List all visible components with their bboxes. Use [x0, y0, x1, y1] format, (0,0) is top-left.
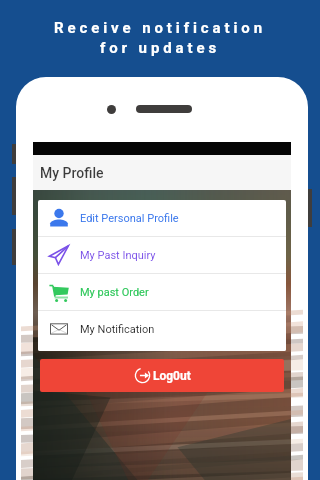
- button[interactable]: My past Order: [38, 274, 286, 310]
- staticText: My past Order: [80, 286, 149, 299]
- staticText: My Profile: [40, 165, 104, 181]
- button[interactable]: My Notification: [38, 311, 286, 347]
- staticText: My Past Inquiry: [80, 249, 156, 262]
- staticText: Receive notification for updates: [54, 19, 266, 56]
- button[interactable]: My Past Inquiry: [38, 237, 286, 273]
- button[interactable]: Log0ut: [40, 359, 284, 392]
- staticText: My Notification: [80, 323, 155, 336]
- button[interactable]: Edit Personal Profile: [38, 200, 286, 236]
- staticText: Log0ut: [153, 369, 191, 383]
- staticText: Edit Personal Profile: [80, 212, 179, 225]
